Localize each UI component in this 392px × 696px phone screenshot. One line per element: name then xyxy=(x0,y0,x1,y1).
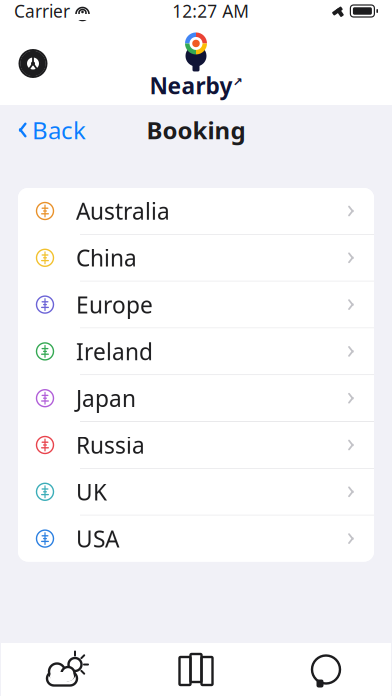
staticText: Europe xyxy=(76,289,153,320)
button[interactable]: USA xyxy=(18,516,374,562)
button[interactable]: Ireland xyxy=(18,328,374,375)
staticText: 12:27 AM xyxy=(172,0,249,22)
button[interactable]: Settings xyxy=(10,34,56,92)
button[interactable]: Weather xyxy=(1,643,131,696)
staticText: Carrier xyxy=(14,0,70,22)
button[interactable]: Australia xyxy=(18,188,374,235)
button[interactable]: Map xyxy=(131,643,261,696)
staticText: Back xyxy=(32,114,86,146)
staticText: Ireland xyxy=(76,336,153,366)
button[interactable]: Back xyxy=(4,106,96,154)
button[interactable]: Japan xyxy=(18,375,374,422)
button[interactable]: UK xyxy=(18,469,374,516)
staticText: ↗ xyxy=(232,75,242,89)
staticText: USA xyxy=(76,523,119,554)
button[interactable]: Russia xyxy=(18,422,374,469)
staticText: Japan xyxy=(76,383,136,413)
staticText: Booking xyxy=(146,114,245,146)
staticText: UK xyxy=(76,477,107,507)
staticText: Australia xyxy=(76,196,170,226)
staticText: China xyxy=(76,243,137,273)
button[interactable]: Europe xyxy=(18,282,374,328)
button[interactable]: China xyxy=(18,235,374,282)
staticText: Russia xyxy=(76,430,145,460)
button[interactable]: Messages xyxy=(261,643,391,696)
staticText: Nearby xyxy=(149,70,232,100)
